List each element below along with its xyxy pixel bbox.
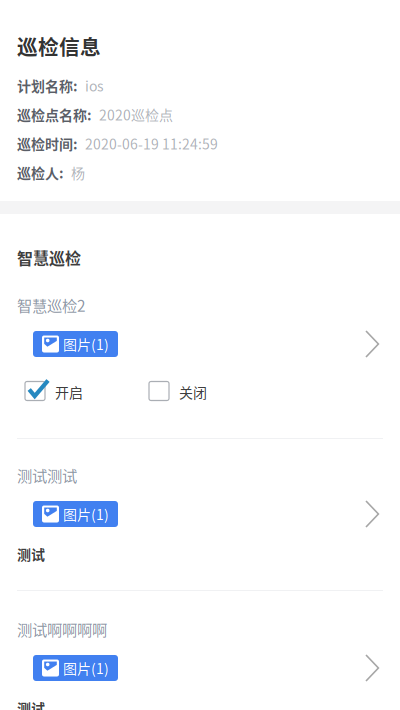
button[interactable]: 图片(1) — [33, 501, 118, 527]
staticText: 测试 — [17, 698, 45, 710]
staticText: 巡检点名称: — [17, 104, 92, 125]
button[interactable]: 测试测试 — [17, 467, 383, 562]
button[interactable]: 图片(1) — [33, 655, 118, 681]
staticText: 测试测试 — [17, 464, 77, 486]
staticText: 杨 — [71, 162, 85, 183]
staticText: 开启 — [55, 382, 83, 402]
staticText: 图片(1) — [63, 334, 109, 354]
staticText: 计划名称: — [17, 75, 78, 96]
staticText: 测试 — [17, 544, 45, 564]
button[interactable]: 开启 — [25, 381, 83, 400]
button[interactable]: 关闭 — [149, 381, 207, 400]
staticText: 巡检时间: — [17, 133, 78, 154]
staticText: 测试啊啊啊啊 — [17, 618, 107, 640]
staticText: 巡检人: — [17, 162, 64, 183]
staticText: 图片(1) — [63, 658, 109, 678]
staticText: 智慧巡检 — [17, 246, 81, 269]
staticText: ios — [85, 75, 104, 96]
staticText: 智慧巡检2 — [17, 294, 86, 316]
staticText: 2020巡检点 — [99, 104, 173, 125]
staticText: 图片(1) — [63, 504, 109, 524]
button[interactable]: 智慧巡检2 — [17, 297, 383, 400]
staticText: 关闭 — [179, 382, 207, 402]
button[interactable]: 图片(1) — [33, 331, 118, 357]
staticText: 巡检信息 — [17, 31, 101, 61]
staticText: 2020-06-19 11:24:59 — [85, 133, 218, 154]
button[interactable]: 测试啊啊啊啊 — [17, 621, 383, 710]
